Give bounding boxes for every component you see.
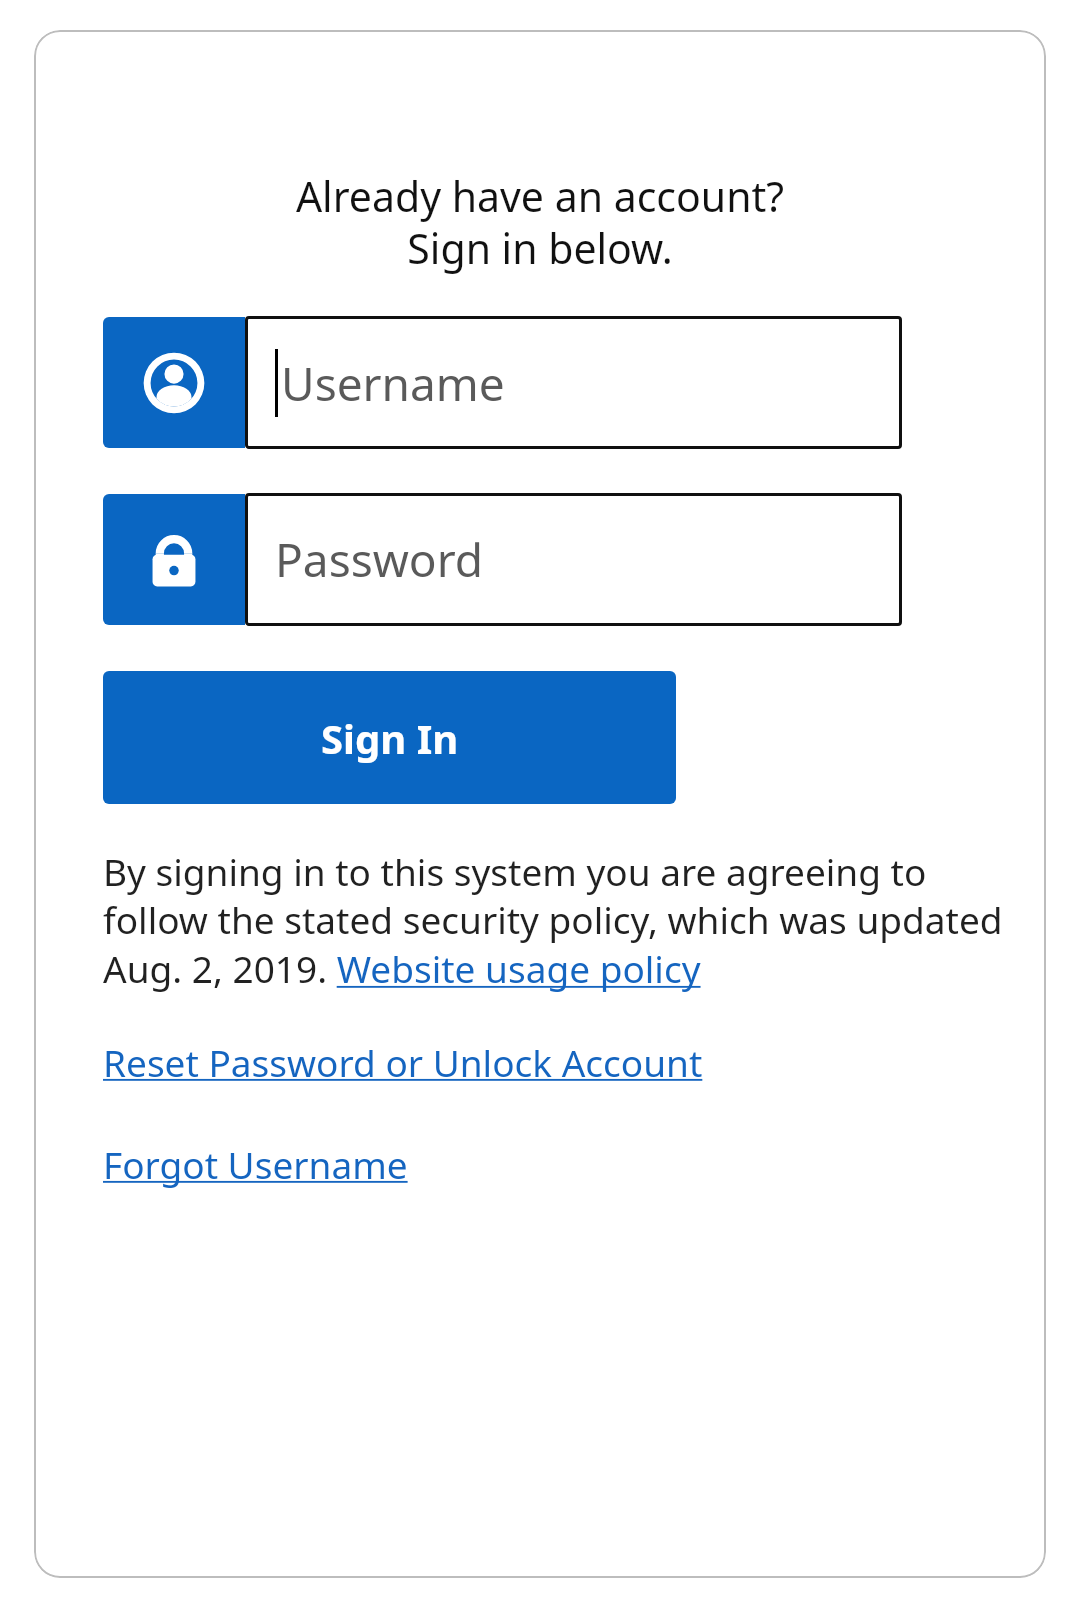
staticText: By signing in to this system you are agr… xyxy=(103,846,1006,994)
staticText: Username xyxy=(281,352,505,415)
button[interactable]: Password xyxy=(103,494,245,625)
button[interactable]: Username xyxy=(103,317,245,448)
staticText: Sign In xyxy=(321,711,459,765)
button[interactable]: Username xyxy=(245,316,902,449)
button[interactable]: Forgot Username xyxy=(103,1139,408,1189)
button[interactable]: Sign In xyxy=(103,671,676,804)
button[interactable]: Password xyxy=(245,493,902,626)
button[interactable]: Reset Password or Unlock Account xyxy=(103,1037,703,1087)
staticText: Reset Password or Unlock Account xyxy=(103,1037,703,1087)
staticText: Password xyxy=(275,528,484,591)
staticText: Already have an account? Sign in below. xyxy=(74,168,1006,276)
staticText: Forgot Username xyxy=(103,1139,408,1189)
